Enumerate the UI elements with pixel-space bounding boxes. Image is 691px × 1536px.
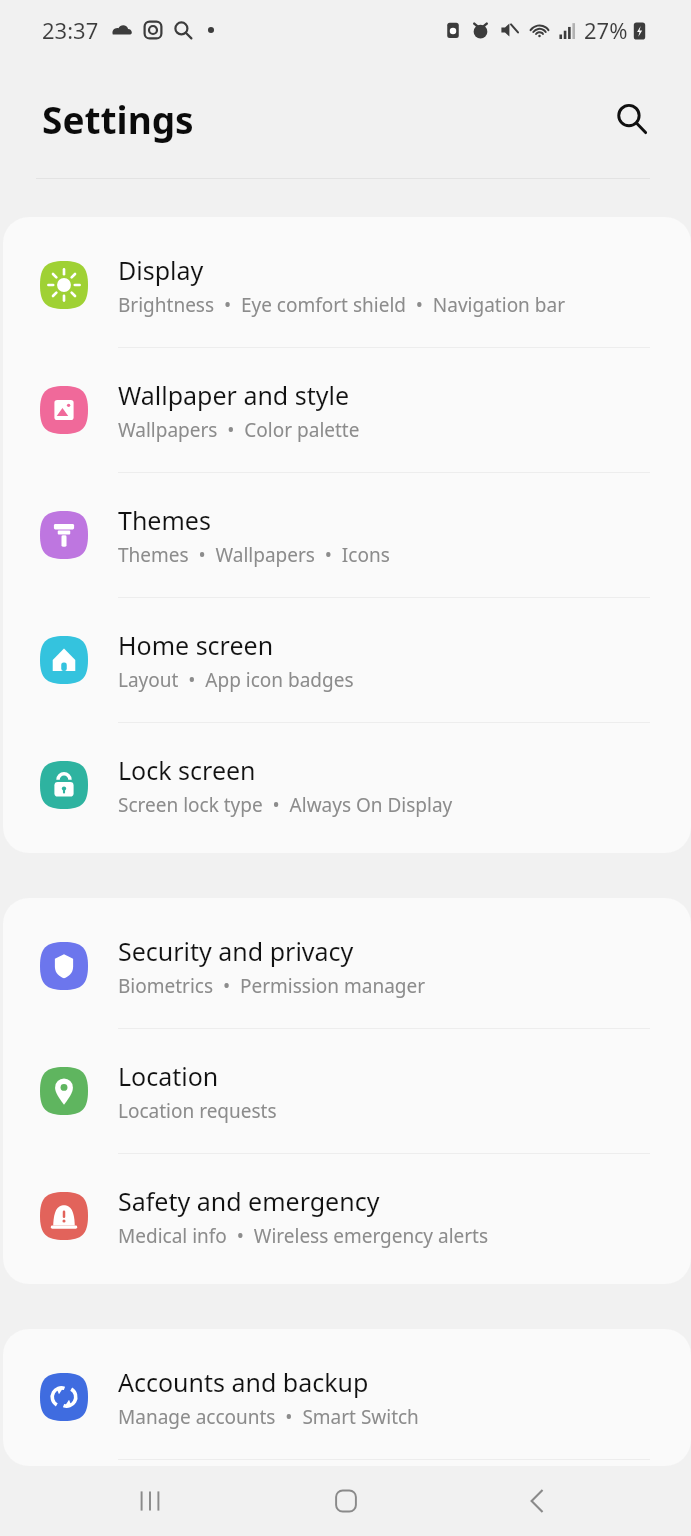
staticText: Display xyxy=(118,253,204,287)
button[interactable]: Recent apps xyxy=(118,1469,182,1533)
staticText: 27% xyxy=(584,15,628,45)
button[interactable]: Home screen xyxy=(3,598,691,723)
button[interactable]: Themes xyxy=(3,473,691,598)
button[interactable]: Wallpaper and style xyxy=(3,348,691,473)
button[interactable]: Location xyxy=(3,1029,691,1154)
staticText: Wallpapers • Color palette xyxy=(118,417,360,443)
staticText: Themes • Wallpapers • Icons xyxy=(118,542,390,568)
staticText: Security and privacy xyxy=(118,934,354,968)
staticText: Settings xyxy=(42,94,194,144)
staticText: Biometrics • Permission manager xyxy=(118,973,426,999)
staticText: Screen lock type • Always On Display xyxy=(118,792,453,818)
staticText: Accounts and backup xyxy=(118,1365,369,1399)
staticText: Location requests xyxy=(118,1098,277,1124)
button[interactable]: Security and privacy xyxy=(3,904,691,1029)
staticText: Lock screen xyxy=(118,753,256,787)
staticText: Layout • App icon badges xyxy=(118,667,354,693)
staticText: Manage accounts • Smart Switch xyxy=(118,1404,419,1430)
staticText: Brightness • Eye comfort shield • Naviga… xyxy=(118,292,565,318)
button[interactable]: Safety and emergency xyxy=(3,1154,691,1278)
button[interactable]: Lock screen xyxy=(3,723,691,847)
staticText: Themes xyxy=(118,503,211,537)
staticText: 23:37 xyxy=(42,15,99,45)
staticText: Home screen xyxy=(118,628,274,662)
button[interactable]: Accounts and backup xyxy=(3,1335,691,1460)
staticText: Wallpaper and style xyxy=(118,378,350,412)
button[interactable]: Back xyxy=(505,1469,569,1533)
staticText: Location xyxy=(118,1059,219,1093)
staticText: Medical info • Wireless emergency alerts xyxy=(118,1223,489,1249)
button[interactable]: Display xyxy=(3,223,691,348)
staticText: Safety and emergency xyxy=(118,1184,380,1218)
button[interactable]: Search xyxy=(603,90,661,148)
button[interactable]: Home xyxy=(314,1469,378,1533)
